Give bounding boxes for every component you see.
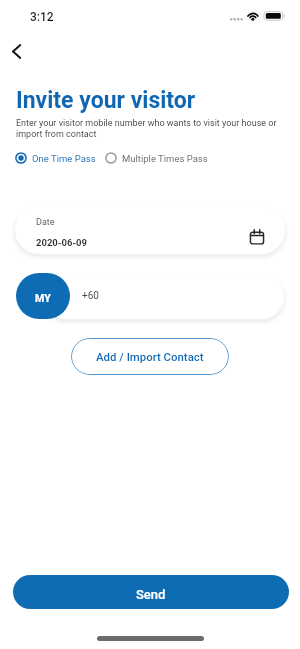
staticText: 3:12 bbox=[30, 10, 54, 24]
button[interactable] bbox=[44, 274, 284, 319]
staticText: Date bbox=[36, 217, 55, 228]
button[interactable]: Pick date bbox=[249, 229, 265, 245]
button[interactable]: Date bbox=[15, 206, 285, 254]
button[interactable]: Add / Import Contact bbox=[71, 338, 229, 375]
button[interactable]: MY bbox=[16, 273, 70, 319]
button[interactable]: One Time Pass bbox=[15, 152, 96, 164]
staticText: Add / Import Contact bbox=[96, 350, 204, 363]
staticText: Enter your visitor mobile number who wan… bbox=[16, 118, 284, 139]
staticText: Multiple Times Pass bbox=[122, 153, 208, 164]
button[interactable]: Send bbox=[13, 575, 289, 609]
staticText: Invite your visitor bbox=[16, 87, 196, 114]
staticText: 2020-06-09 bbox=[36, 237, 87, 248]
staticText: Send bbox=[136, 587, 166, 602]
staticText: MY bbox=[35, 292, 51, 304]
button[interactable]: Back bbox=[1, 36, 31, 66]
staticText: One Time Pass bbox=[32, 153, 96, 164]
button[interactable]: Multiple Times Pass bbox=[105, 152, 208, 164]
staticText: +60 bbox=[82, 290, 99, 302]
